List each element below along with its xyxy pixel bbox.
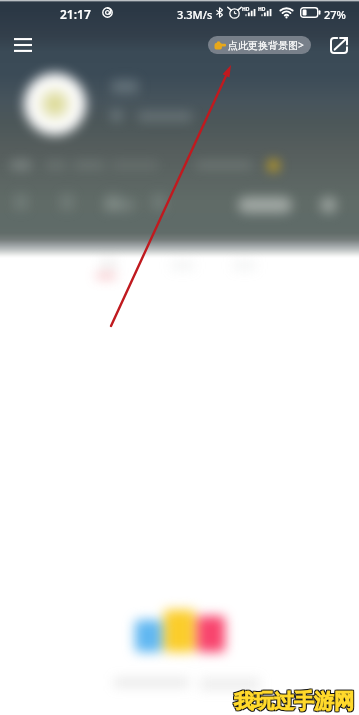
staticText: 27% — [324, 7, 346, 22]
staticText: 点此更换背景图> — [228, 38, 304, 52]
staticText: 我玩过手游网 — [235, 689, 355, 714]
button[interactable]: Menu — [5, 28, 41, 62]
staticText: HD — [258, 6, 266, 13]
staticText: 我玩过手游网 — [234, 689, 354, 714]
staticText: 我玩过手游网 — [234, 690, 354, 715]
staticText: 3.3M/s — [177, 7, 213, 22]
staticText: 我玩过手游网 — [233, 688, 353, 713]
button[interactable] — [100, 259, 117, 269]
staticText: 我玩过手游网 — [233, 689, 353, 714]
button[interactable]: 点此更换背景图> — [208, 36, 311, 54]
staticText: 我玩过手游网 — [233, 690, 353, 715]
staticText: 我玩过手游网 — [235, 690, 355, 715]
button[interactable]: Open in new window — [327, 33, 351, 57]
staticText: 21:17 — [60, 6, 91, 22]
staticText: 我玩过手游网 — [235, 688, 355, 713]
staticText: 我玩过手游网 — [234, 688, 354, 713]
staticText: HD — [242, 6, 250, 13]
